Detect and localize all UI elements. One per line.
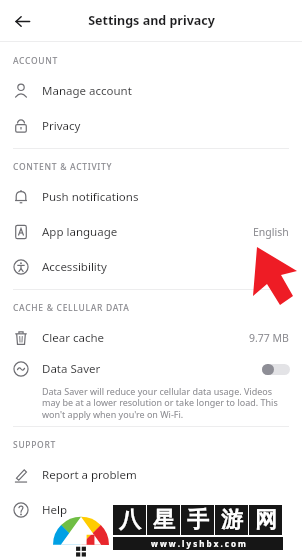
staticText: SUPPORT (13, 439, 57, 451)
staticText: English (253, 225, 289, 239)
button[interactable]: Data Saver toggle (262, 364, 290, 375)
button[interactable]: Help (0, 492, 302, 527)
staticText: CONTENT & ACTIVITY (13, 161, 113, 173)
staticText: Data Saver (42, 361, 262, 377)
button[interactable]: Manage account (0, 73, 302, 108)
button[interactable]: Back (6, 5, 38, 37)
button[interactable]: Push notifications (0, 179, 302, 214)
staticText: Push notifications (42, 189, 289, 205)
staticText: Data Saver will reduce your cellular dat… (42, 385, 282, 421)
button[interactable]: Clear cache (0, 320, 302, 355)
button[interactable]: Data Saver (0, 355, 302, 421)
staticText: 八 (119, 506, 141, 534)
staticText: 网 (255, 506, 277, 534)
button[interactable]: Privacy (0, 108, 302, 143)
staticText: Clear cache (42, 330, 249, 346)
staticText: w w w . l y s h b x . c o m (151, 538, 246, 549)
staticText: 星 (153, 506, 175, 534)
staticText: Report a problem (42, 467, 289, 483)
staticText: 手 (187, 506, 209, 534)
staticText: Accessibility (42, 259, 289, 275)
staticText: ACCOUNT (13, 55, 59, 67)
button[interactable]: Accessibility (0, 249, 302, 284)
staticText: Help (42, 502, 289, 518)
staticText: App language (42, 224, 253, 240)
button[interactable]: Report a problem (0, 457, 302, 492)
staticText: 9.77 MB (249, 331, 289, 345)
button[interactable]: App language (0, 214, 302, 249)
staticText: Manage account (42, 83, 289, 99)
staticText: Settings and privacy (88, 12, 215, 29)
staticText: 游 (221, 506, 243, 534)
staticText: Privacy (42, 118, 289, 134)
staticText: CACHE & CELLULAR DATA (13, 302, 130, 314)
